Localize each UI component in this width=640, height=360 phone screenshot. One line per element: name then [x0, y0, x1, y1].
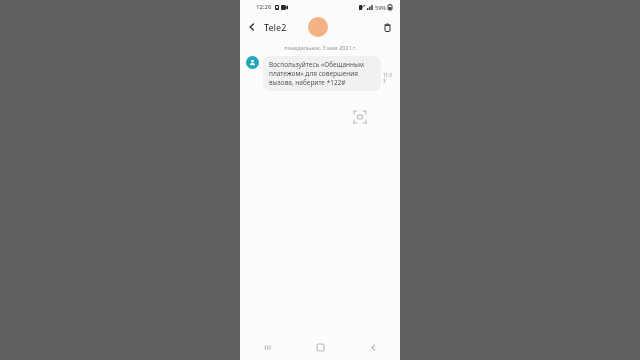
- button[interactable]: Recents: [240, 334, 294, 360]
- button[interactable]: Back: [347, 334, 400, 360]
- staticText: понедельник, 3 мая 2021 г.: [284, 44, 357, 51]
- button[interactable]: Contact avatar: [308, 17, 328, 37]
- button[interactable]: Воспользуйтесь «Обещанным платежом» для …: [263, 56, 381, 91]
- button[interactable]: Tele2: [264, 21, 287, 33]
- staticText: 59%: [375, 4, 386, 11]
- button[interactable]: Scan: [350, 107, 370, 127]
- staticText: 12:26: [256, 3, 272, 11]
- staticText: Воспользуйтесь «Обещанным платежом» для …: [269, 60, 375, 87]
- button[interactable]: Delete: [376, 16, 398, 38]
- staticText: 11:33: [383, 72, 394, 84]
- button[interactable]: Back: [242, 17, 262, 37]
- button[interactable]: Home: [294, 334, 347, 360]
